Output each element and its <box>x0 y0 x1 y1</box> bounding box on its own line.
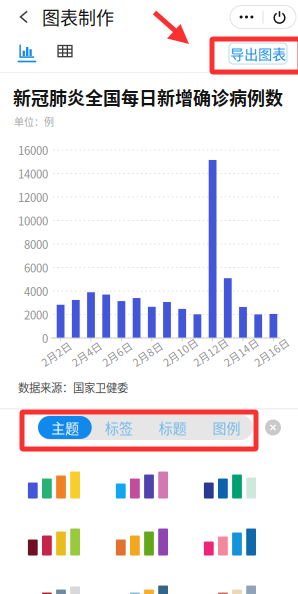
button[interactable]: Theme 5 <box>115 527 169 555</box>
staticText: 10000 <box>18 212 48 229</box>
staticText: 2月12日 <box>190 357 230 372</box>
staticText: 16000 <box>18 142 48 158</box>
staticText: 8000 <box>24 236 48 252</box>
staticText: 2月10日 <box>160 357 200 372</box>
staticText: 12000 <box>18 189 48 205</box>
button[interactable]: Back <box>8 1 40 33</box>
staticText: 标题 <box>158 417 186 438</box>
button[interactable]: Close mini program <box>263 6 295 28</box>
button[interactable]: Theme 2 <box>115 470 169 498</box>
staticText: 0 <box>42 330 48 346</box>
button[interactable]: Theme 1 <box>27 470 81 498</box>
button[interactable]: 标题 <box>145 416 199 439</box>
staticText: 2月4日 <box>68 357 102 372</box>
staticText: 图例 <box>212 417 240 438</box>
staticText: 标签 <box>105 417 133 438</box>
button[interactable]: 标签 <box>92 416 146 439</box>
button[interactable]: Theme 4 <box>27 527 81 555</box>
staticText: 图表制作 <box>42 4 114 30</box>
staticText: 4000 <box>24 283 48 299</box>
staticText: 导出图表 <box>230 43 286 64</box>
staticText: 6000 <box>24 259 48 276</box>
staticText: 数据来源：国家卫健委 <box>18 379 128 395</box>
button[interactable]: 图例 <box>199 416 253 439</box>
staticText: 2月8日 <box>129 357 163 372</box>
button[interactable]: Theme 6 <box>203 527 257 555</box>
staticText: 2000 <box>24 306 48 323</box>
button[interactable]: Chart view <box>13 40 41 66</box>
staticText: 新冠肺炎全国每日新增确诊病例数 <box>13 84 283 110</box>
staticText: 2月16日 <box>251 357 291 372</box>
button[interactable]: 主题 <box>38 416 92 439</box>
button[interactable]: 导出图表 <box>229 43 287 64</box>
staticText: 主题 <box>51 417 79 438</box>
button[interactable]: Theme 7 <box>27 584 81 594</box>
staticText: 14000 <box>18 165 48 182</box>
button[interactable]: Theme 3 <box>203 470 257 498</box>
staticText: 2月6日 <box>99 357 133 372</box>
button[interactable]: Theme 9 <box>203 584 257 594</box>
staticText: 2月14日 <box>220 357 260 372</box>
button[interactable]: Theme 8 <box>115 584 169 594</box>
staticText: 单位：例 <box>14 114 54 129</box>
staticText: 2月2日 <box>38 357 72 372</box>
button[interactable]: Close panel <box>260 414 286 440</box>
button[interactable]: Table view <box>51 40 79 66</box>
button[interactable]: More <box>230 6 262 28</box>
